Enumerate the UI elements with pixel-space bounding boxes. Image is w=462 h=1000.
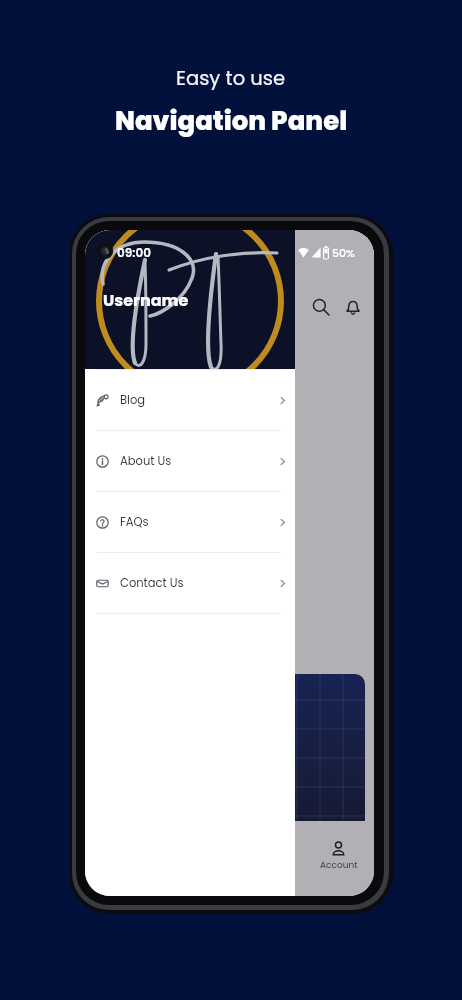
button[interactable]: Search bbox=[306, 292, 336, 322]
button[interactable]: About Us bbox=[85, 431, 295, 491]
staticText: About Us bbox=[120, 453, 172, 469]
staticText: 50% bbox=[332, 245, 355, 260]
staticText: Easy to use bbox=[176, 65, 286, 92]
staticText: Navigation Panel bbox=[115, 103, 348, 139]
button[interactable]: Account bbox=[295, 834, 374, 896]
button[interactable]: Notifications bbox=[338, 292, 368, 322]
button[interactable]: Blog bbox=[85, 370, 295, 430]
button[interactable]: Contact Us bbox=[85, 553, 295, 613]
staticText: Account bbox=[320, 859, 358, 872]
staticText: Username bbox=[103, 289, 189, 311]
staticText: FAQs bbox=[120, 514, 149, 530]
staticText: Blog bbox=[120, 392, 146, 408]
staticText: Contact Us bbox=[120, 575, 184, 591]
button[interactable]: FAQs bbox=[85, 492, 295, 552]
staticText: 09:00 bbox=[117, 244, 151, 261]
